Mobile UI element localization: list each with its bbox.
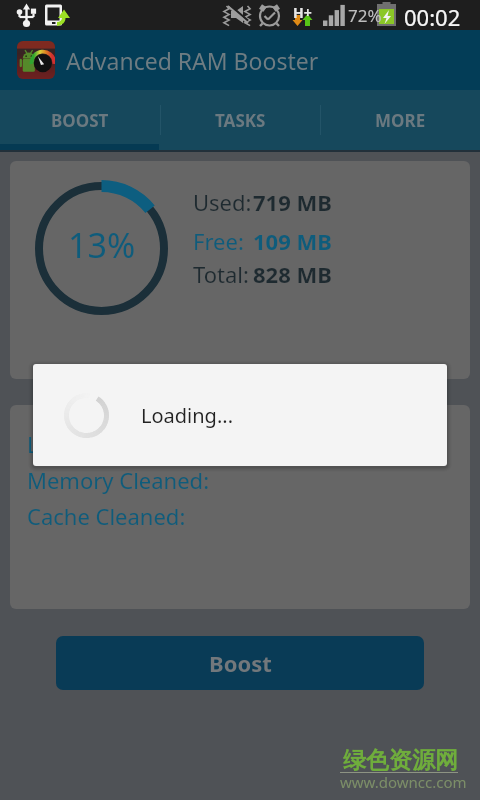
staticText: Memory Cleaned: (27, 465, 210, 495)
staticText: Used: (193, 187, 252, 217)
staticText: Loading... (141, 402, 233, 429)
staticText: 绿色资源网 (343, 746, 458, 775)
staticText: 109 MB (253, 226, 332, 256)
staticText: MORE (375, 109, 426, 132)
staticText: Last Boost: (27, 429, 141, 459)
staticText: Total: (193, 259, 249, 289)
staticText: Free: (193, 226, 250, 256)
button[interactable]: Boost (56, 636, 424, 690)
staticText: www.downcc.com (340, 772, 467, 792)
staticText: 00:02 (404, 2, 461, 32)
staticText: BOOST (51, 109, 109, 132)
button[interactable]: MORE (321, 90, 480, 150)
staticText: TASKS (215, 109, 266, 132)
staticText: 719 MB (253, 187, 332, 217)
staticText: 13% (68, 222, 136, 268)
staticText: 72% (348, 4, 382, 27)
staticText: Advanced RAM Booster (66, 45, 319, 76)
staticText: Cache Cleaned: (27, 501, 186, 531)
staticText: 828 MB (253, 259, 332, 289)
button[interactable]: TASKS (161, 90, 320, 150)
button[interactable]: BOOST (0, 90, 160, 150)
staticText: Boost (209, 648, 272, 678)
staticText: H+ (293, 3, 312, 22)
